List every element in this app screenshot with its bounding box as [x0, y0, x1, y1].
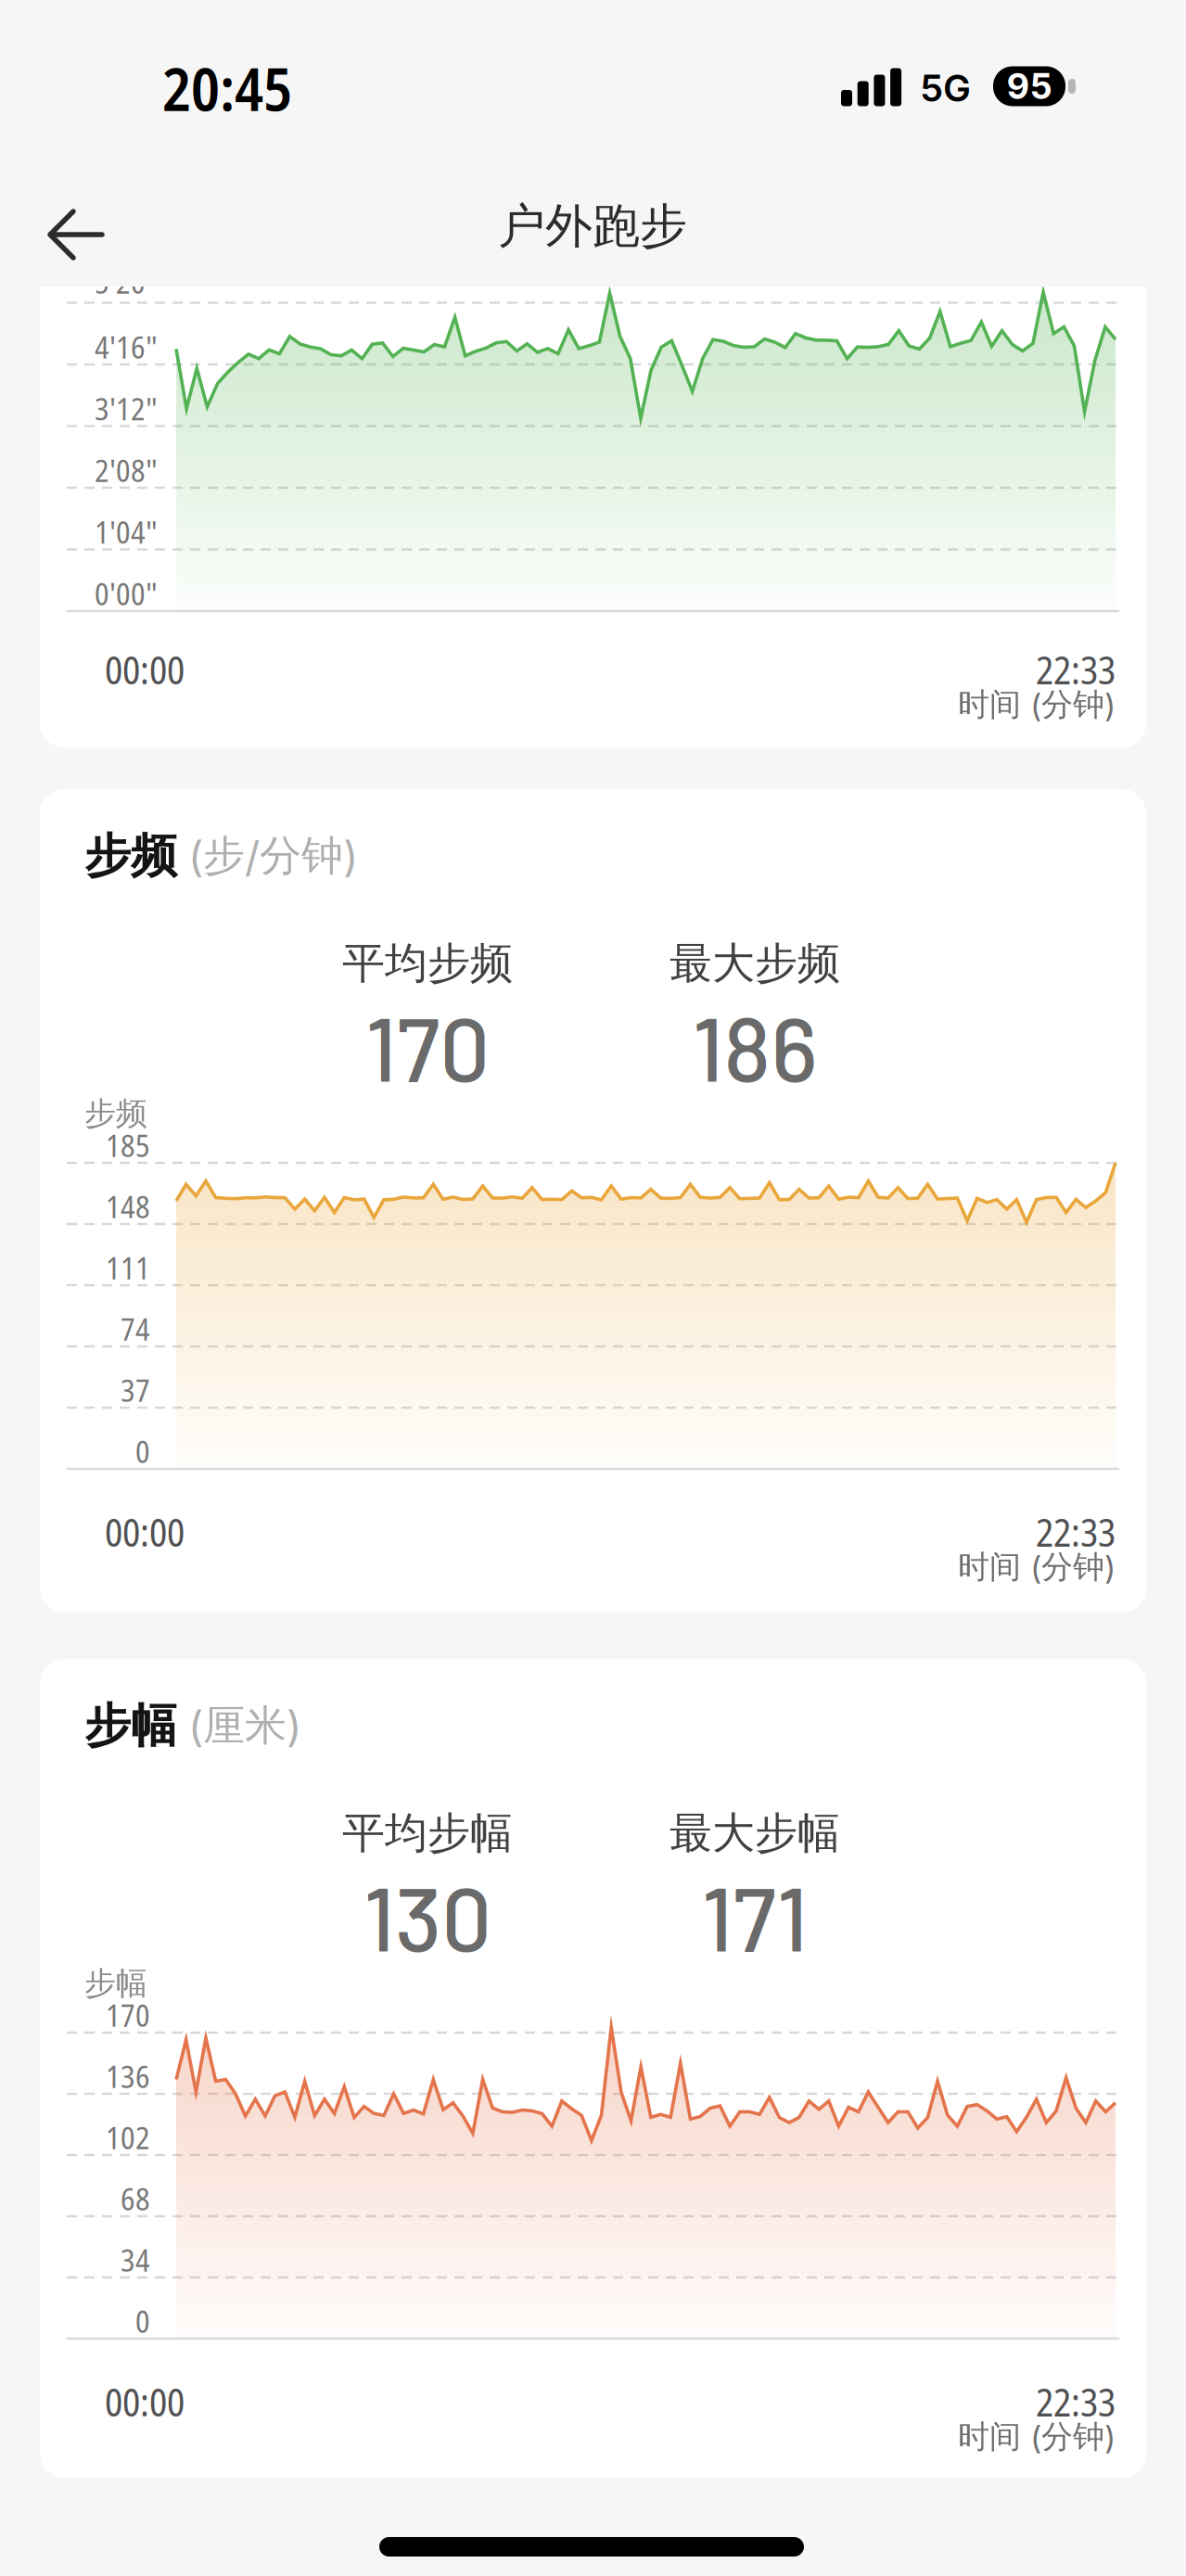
staticText: 37	[121, 1369, 150, 1411]
staticText: 22:33	[1036, 2376, 1116, 2428]
staticText: 20:45	[162, 48, 292, 129]
staticText: 1'04"	[95, 511, 158, 553]
staticText: 68	[121, 2178, 150, 2219]
staticText: 102	[106, 2117, 150, 2158]
staticText: 平均步幅	[342, 1807, 513, 1859]
staticText: 171	[701, 1862, 808, 1969]
staticText: 74	[121, 1308, 150, 1350]
staticText: 00:00	[105, 2376, 185, 2428]
staticText: 111	[106, 1247, 150, 1288]
button[interactable]	[32, 193, 121, 276]
staticText: 时间 (分钟)	[958, 2418, 1116, 2456]
staticText: (步/分钟)	[188, 830, 358, 882]
staticText: 步幅	[84, 1697, 177, 1754]
staticText: 平均步频	[342, 937, 513, 990]
staticText: 步频	[84, 827, 177, 884]
staticText: 34	[121, 2239, 150, 2281]
staticText: 185	[106, 1124, 150, 1166]
staticText: 136	[106, 2055, 150, 2097]
staticText: 186	[692, 993, 817, 1099]
staticText: 0	[135, 2300, 150, 2342]
staticText: 00:00	[105, 1506, 185, 1558]
staticText: 0'00"	[95, 573, 158, 614]
staticText: 130	[363, 1862, 491, 1969]
staticText: 5G	[920, 66, 971, 110]
staticText: (厘米)	[188, 1700, 301, 1751]
staticText: 2'08"	[95, 449, 158, 491]
staticText: 步幅	[84, 1964, 147, 2003]
staticText: 步频	[84, 1094, 147, 1133]
staticText: 0	[135, 1430, 150, 1472]
staticText: 95	[1007, 65, 1052, 107]
staticText: 时间 (分钟)	[958, 685, 1116, 724]
staticText: 户外跑步	[498, 197, 687, 255]
staticText: 148	[106, 1186, 150, 1227]
staticText: 时间 (分钟)	[958, 1548, 1116, 1586]
staticText: 170	[106, 1994, 150, 2036]
staticText: 170	[365, 993, 490, 1099]
staticText: 最大步幅	[670, 1807, 840, 1859]
staticText: 5'20"	[95, 261, 158, 303]
staticText: 最大步频	[670, 937, 840, 990]
staticText: 00:00	[105, 644, 185, 695]
staticText: 22:33	[1036, 1506, 1116, 1558]
staticText: 3'12"	[95, 388, 158, 429]
staticText: 22:33	[1036, 644, 1116, 695]
staticText: 4'16"	[95, 326, 158, 368]
